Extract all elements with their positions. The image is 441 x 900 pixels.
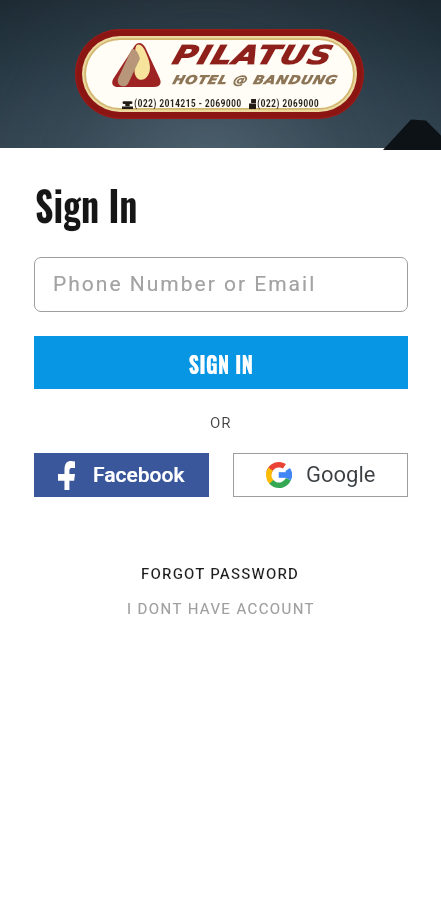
button[interactable]: Google: [233, 453, 408, 497]
staticText: FORGOT PASSWORD: [141, 565, 300, 583]
button[interactable]: FORGOT PASSWORD: [0, 565, 441, 583]
staticText: PILATUS: [171, 40, 331, 70]
button[interactable]: Facebook: [34, 453, 209, 497]
staticText: SIGN IN: [189, 345, 254, 381]
staticText: Phone Number or Email: [53, 272, 317, 297]
staticText: (022) 2014215 - 2069000: [134, 98, 242, 110]
staticText: Sign In: [35, 172, 138, 236]
button[interactable]: Phone Number or Email: [34, 257, 408, 312]
staticText: OR: [210, 414, 232, 432]
staticText: I DONT HAVE ACCOUNT: [127, 600, 315, 618]
staticText: Google: [306, 462, 376, 488]
staticText: Facebook: [93, 463, 185, 488]
staticText: (022) 2069000: [257, 98, 319, 110]
staticText: HOTEL @ BANDUNG: [172, 73, 337, 87]
button[interactable]: I DONT HAVE ACCOUNT: [0, 600, 441, 618]
button[interactable]: SIGN IN: [34, 336, 408, 389]
